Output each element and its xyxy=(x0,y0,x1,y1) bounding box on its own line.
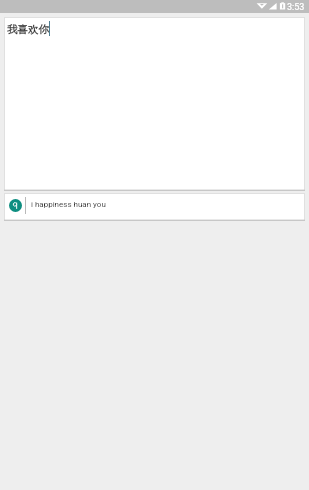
staticText: i happiness huan you xyxy=(31,200,106,209)
staticText: 3:53 xyxy=(287,2,305,13)
button[interactable]: 我喜欢你 xyxy=(4,17,305,191)
staticText: 我喜欢你 xyxy=(7,23,49,36)
button[interactable]: Translate xyxy=(4,193,305,221)
staticText: 我喜欢你 xyxy=(7,23,49,36)
other: Translate xyxy=(9,199,22,212)
